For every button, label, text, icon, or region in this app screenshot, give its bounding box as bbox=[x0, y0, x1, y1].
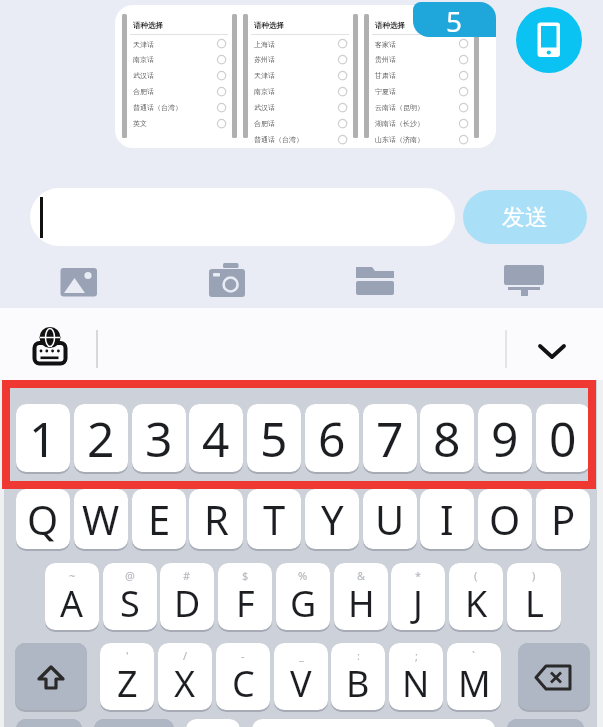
staticText: 山东话（济南） bbox=[375, 135, 424, 144]
button[interactable]: 5 bbox=[413, 2, 496, 37]
button[interactable]: Q bbox=[16, 489, 70, 551]
button[interactable]: 3 bbox=[132, 404, 186, 474]
button[interactable]: : bbox=[331, 643, 385, 712]
button[interactable]: 6 bbox=[305, 404, 359, 474]
button[interactable]: I bbox=[420, 489, 474, 551]
staticText: S bbox=[120, 579, 140, 628]
button[interactable]: 9 bbox=[478, 404, 532, 474]
staticText: G bbox=[290, 579, 317, 628]
button[interactable]: 0 bbox=[536, 404, 590, 474]
staticText: W bbox=[82, 492, 120, 546]
staticText: 宁夏话 bbox=[375, 87, 396, 96]
button[interactable]: # bbox=[160, 563, 214, 632]
staticText: Z bbox=[117, 659, 138, 708]
staticText: - bbox=[241, 648, 245, 663]
button[interactable] bbox=[518, 643, 590, 712]
button[interactable]: 5 bbox=[247, 404, 301, 474]
staticText: ( bbox=[474, 568, 478, 583]
staticText: L bbox=[525, 579, 544, 628]
staticText: ` bbox=[472, 648, 476, 663]
button[interactable] bbox=[516, 7, 582, 73]
button[interactable] bbox=[15, 643, 87, 712]
staticText: 0 bbox=[549, 406, 577, 471]
staticText: 2 bbox=[87, 406, 115, 471]
staticText: A bbox=[60, 579, 84, 628]
staticText: O bbox=[489, 492, 521, 546]
button[interactable]: T bbox=[247, 489, 301, 551]
button[interactable]: 7 bbox=[363, 404, 417, 474]
button[interactable] bbox=[530, 335, 574, 367]
button[interactable] bbox=[354, 262, 396, 298]
button[interactable]: ) bbox=[507, 563, 561, 632]
staticText: 发送 bbox=[502, 203, 548, 232]
staticText: Y bbox=[321, 492, 344, 546]
staticText: 武汉话 bbox=[254, 103, 275, 112]
staticText: D bbox=[174, 579, 201, 628]
staticText: 1 bbox=[29, 406, 57, 471]
staticText: 5 bbox=[260, 406, 288, 471]
staticText: 上海话 bbox=[254, 40, 275, 49]
button[interactable] bbox=[16, 719, 82, 727]
button[interactable] bbox=[205, 260, 249, 300]
button[interactable]: @ bbox=[103, 563, 157, 632]
button[interactable]: R bbox=[189, 489, 243, 551]
button[interactable]: U bbox=[363, 489, 417, 551]
staticText: 语种选择 bbox=[133, 21, 163, 30]
button[interactable]: & bbox=[334, 563, 388, 632]
button[interactable]: ( bbox=[449, 563, 503, 632]
button[interactable]: P bbox=[536, 489, 590, 551]
staticText: J bbox=[413, 579, 423, 628]
staticText: @ bbox=[125, 568, 135, 583]
staticText: 贵州话 bbox=[375, 55, 396, 64]
staticText: ; bbox=[415, 648, 418, 663]
staticText: 客家话 bbox=[375, 40, 396, 49]
button[interactable]: ~ bbox=[45, 563, 99, 632]
staticText: $ bbox=[242, 568, 249, 583]
staticText: 天津话 bbox=[133, 40, 154, 49]
button[interactable]: 4 bbox=[189, 404, 243, 474]
staticText: # bbox=[183, 568, 191, 583]
staticText: ~ bbox=[69, 568, 76, 583]
button[interactable]: W bbox=[74, 489, 128, 551]
button[interactable]: ` bbox=[447, 643, 501, 712]
button[interactable]: ; bbox=[389, 643, 443, 712]
staticText: 合肥话 bbox=[254, 119, 275, 128]
staticText: M bbox=[458, 659, 491, 708]
staticText: N bbox=[402, 659, 430, 708]
staticText: 苏州话 bbox=[254, 55, 275, 64]
button[interactable] bbox=[507, 719, 584, 727]
button[interactable]: $ bbox=[218, 563, 272, 632]
button[interactable]: E bbox=[132, 489, 186, 551]
button[interactable] bbox=[94, 719, 174, 727]
staticText: & bbox=[357, 568, 366, 583]
button[interactable]: 8 bbox=[420, 404, 474, 474]
button[interactable]: * bbox=[391, 563, 445, 632]
button[interactable]: 1 bbox=[16, 404, 70, 474]
staticText: U bbox=[375, 492, 405, 546]
staticText: * bbox=[415, 568, 422, 583]
staticText: 甘肃话 bbox=[375, 71, 396, 80]
staticText: T bbox=[263, 492, 286, 546]
button[interactable]: 2 bbox=[74, 404, 128, 474]
staticText: P bbox=[551, 492, 576, 546]
staticText: 6 bbox=[318, 406, 346, 471]
button[interactable]: _ bbox=[274, 643, 328, 712]
button[interactable]: / bbox=[158, 643, 212, 712]
staticText: 武汉话 bbox=[133, 71, 154, 80]
button[interactable] bbox=[186, 719, 240, 727]
button[interactable] bbox=[26, 320, 76, 372]
staticText: 语种选择 bbox=[375, 21, 405, 30]
button[interactable]: % bbox=[276, 563, 330, 632]
button[interactable] bbox=[252, 719, 495, 727]
staticText: 7 bbox=[376, 406, 404, 471]
button[interactable] bbox=[30, 188, 455, 246]
button[interactable] bbox=[57, 264, 101, 300]
staticText: 湖南话（长沙） bbox=[375, 119, 424, 128]
button[interactable]: ' bbox=[100, 643, 154, 712]
button[interactable] bbox=[502, 262, 546, 298]
button[interactable]: - bbox=[216, 643, 270, 712]
button[interactable]: O bbox=[478, 489, 532, 551]
staticText: I bbox=[440, 492, 454, 546]
button[interactable]: Y bbox=[305, 489, 359, 551]
button[interactable]: 发送 bbox=[463, 190, 587, 244]
